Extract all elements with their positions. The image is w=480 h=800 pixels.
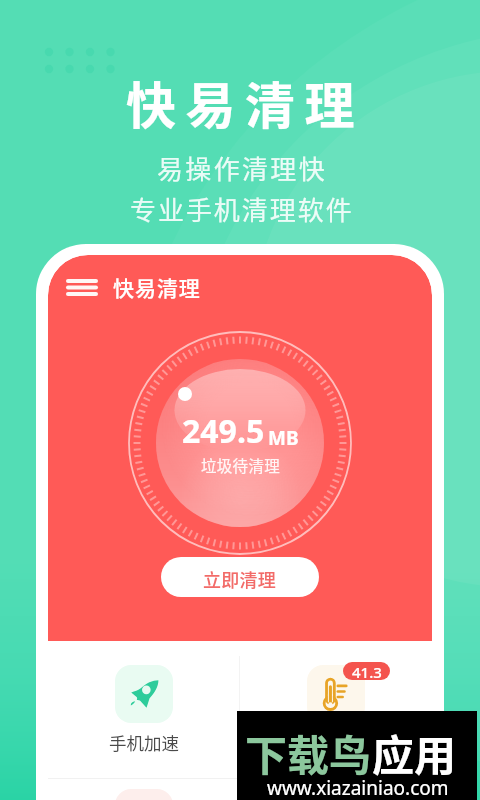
staticText: 41.3 [352,662,382,680]
button[interactable]: 手机加速 [48,641,239,755]
button[interactable]: Menu [48,255,432,319]
staticText: 快易清理 [126,66,364,138]
staticText: 应用 [372,722,457,783]
staticText: 易操作清理快 [157,149,328,187]
staticText: 垃圾待清理 [201,454,281,476]
staticText: 手机加速 [109,730,179,755]
staticText: 249.5 [182,409,265,453]
button[interactable]: 立即清理 [161,557,319,597]
staticText: 立即清理 [203,566,277,592]
button[interactable] [240,779,432,800]
staticText: 下载鸟 [245,722,372,783]
other: Menu [66,279,98,296]
button[interactable]: 41.3 [240,641,432,755]
staticText: www.xiazainiao.com [267,775,449,800]
staticText: MB [268,425,299,451]
staticText: 手机降温 [301,730,371,755]
staticText: 专业手机清理软件 [130,190,354,228]
button[interactable] [48,779,239,800]
staticText: 快易清理 [113,272,201,302]
